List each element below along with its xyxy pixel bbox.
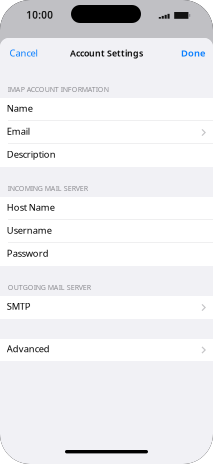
button[interactable]: Email	[0, 121, 213, 144]
button[interactable]: Username	[0, 220, 213, 243]
button[interactable]: Advanced	[0, 339, 213, 361]
button[interactable]: Cancel	[0, 38, 47, 68]
staticText: INCOMING MAIL SERVER	[8, 183, 88, 193]
button[interactable]: SMTP	[0, 296, 213, 319]
staticText: Password	[7, 247, 49, 259]
staticText: Cancel	[9, 47, 37, 59]
staticText: Name	[7, 102, 33, 114]
button[interactable]: Done	[173, 38, 213, 68]
staticText: OUTGOING MAIL SERVER	[8, 282, 91, 292]
staticText: Host Name	[7, 201, 55, 213]
staticText: 10:00	[26, 8, 53, 22]
staticText: Description	[7, 148, 56, 160]
button[interactable]: Password	[0, 243, 213, 266]
button[interactable]: Description	[0, 144, 213, 167]
button[interactable]: Name	[0, 98, 213, 121]
staticText: Done	[181, 47, 205, 59]
staticText: Advanced	[7, 342, 50, 355]
staticText: Account Settings	[70, 47, 143, 59]
staticText: Username	[7, 224, 52, 236]
staticText: Email	[7, 125, 30, 137]
staticText: IMAP ACCOUNT INFORMATION	[8, 84, 109, 94]
staticText: SMTP	[7, 300, 31, 312]
button[interactable]: Host Name	[0, 197, 213, 220]
